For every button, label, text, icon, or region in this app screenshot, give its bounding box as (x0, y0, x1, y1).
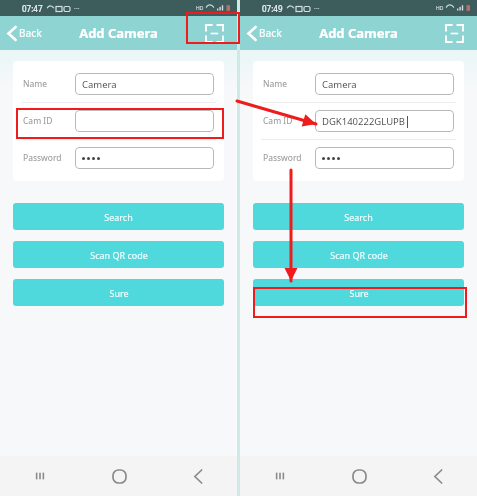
staticText: Password (263, 152, 302, 164)
staticText: Sure (109, 287, 129, 299)
staticText: Add Camera (319, 24, 398, 42)
button[interactable]: Scan QR code (253, 241, 464, 268)
staticText: Add Camera (79, 24, 158, 42)
button[interactable]: Password (13, 140, 224, 176)
button[interactable]: Recent apps (257, 459, 303, 493)
staticText: Camera (322, 78, 357, 91)
button[interactable]: Scan QR code (201, 20, 227, 46)
button[interactable]: Back (240, 22, 290, 44)
staticText: Back (19, 26, 42, 40)
staticText: 07:49 (262, 3, 283, 14)
button[interactable]: Home (336, 459, 382, 493)
staticText: Name (263, 78, 287, 90)
button[interactable]: Search (13, 203, 224, 230)
staticText: Scan QR code (90, 249, 148, 261)
staticText: ··· (314, 4, 320, 14)
staticText: ··· (74, 4, 80, 14)
staticText: Back (259, 26, 282, 40)
button[interactable]: Name (13, 66, 224, 102)
button[interactable]: Search (253, 203, 464, 230)
button[interactable]: Sure (253, 279, 464, 306)
staticText: 07:47 (22, 3, 43, 14)
button[interactable]: Cam ID (13, 103, 224, 139)
button[interactable]: Back (175, 459, 221, 493)
button[interactable]: Back (0, 22, 50, 44)
staticText: HD (196, 5, 204, 12)
button[interactable]: Name (253, 66, 464, 102)
staticText: Sure (349, 287, 369, 299)
staticText: Password (23, 152, 62, 164)
button[interactable]: Scan QR code (13, 241, 224, 268)
staticText: Search (104, 211, 133, 223)
staticText: Search (344, 211, 373, 223)
staticText: Camera (82, 78, 117, 91)
button[interactable]: Scan QR code (441, 20, 467, 46)
button[interactable]: Home (96, 459, 142, 493)
staticText: Cam ID (23, 115, 53, 127)
staticText: HD (436, 5, 444, 12)
button[interactable]: Sure (13, 279, 224, 306)
button[interactable]: Password (253, 140, 464, 176)
staticText: Cam ID (263, 115, 293, 127)
staticText: Scan QR code (330, 249, 388, 261)
button[interactable]: Recent apps (17, 459, 63, 493)
button[interactable]: Cam ID (253, 103, 464, 139)
staticText: DGK140222GLUPB (322, 115, 406, 128)
button[interactable]: Back (415, 459, 461, 493)
staticText: Name (23, 78, 47, 90)
